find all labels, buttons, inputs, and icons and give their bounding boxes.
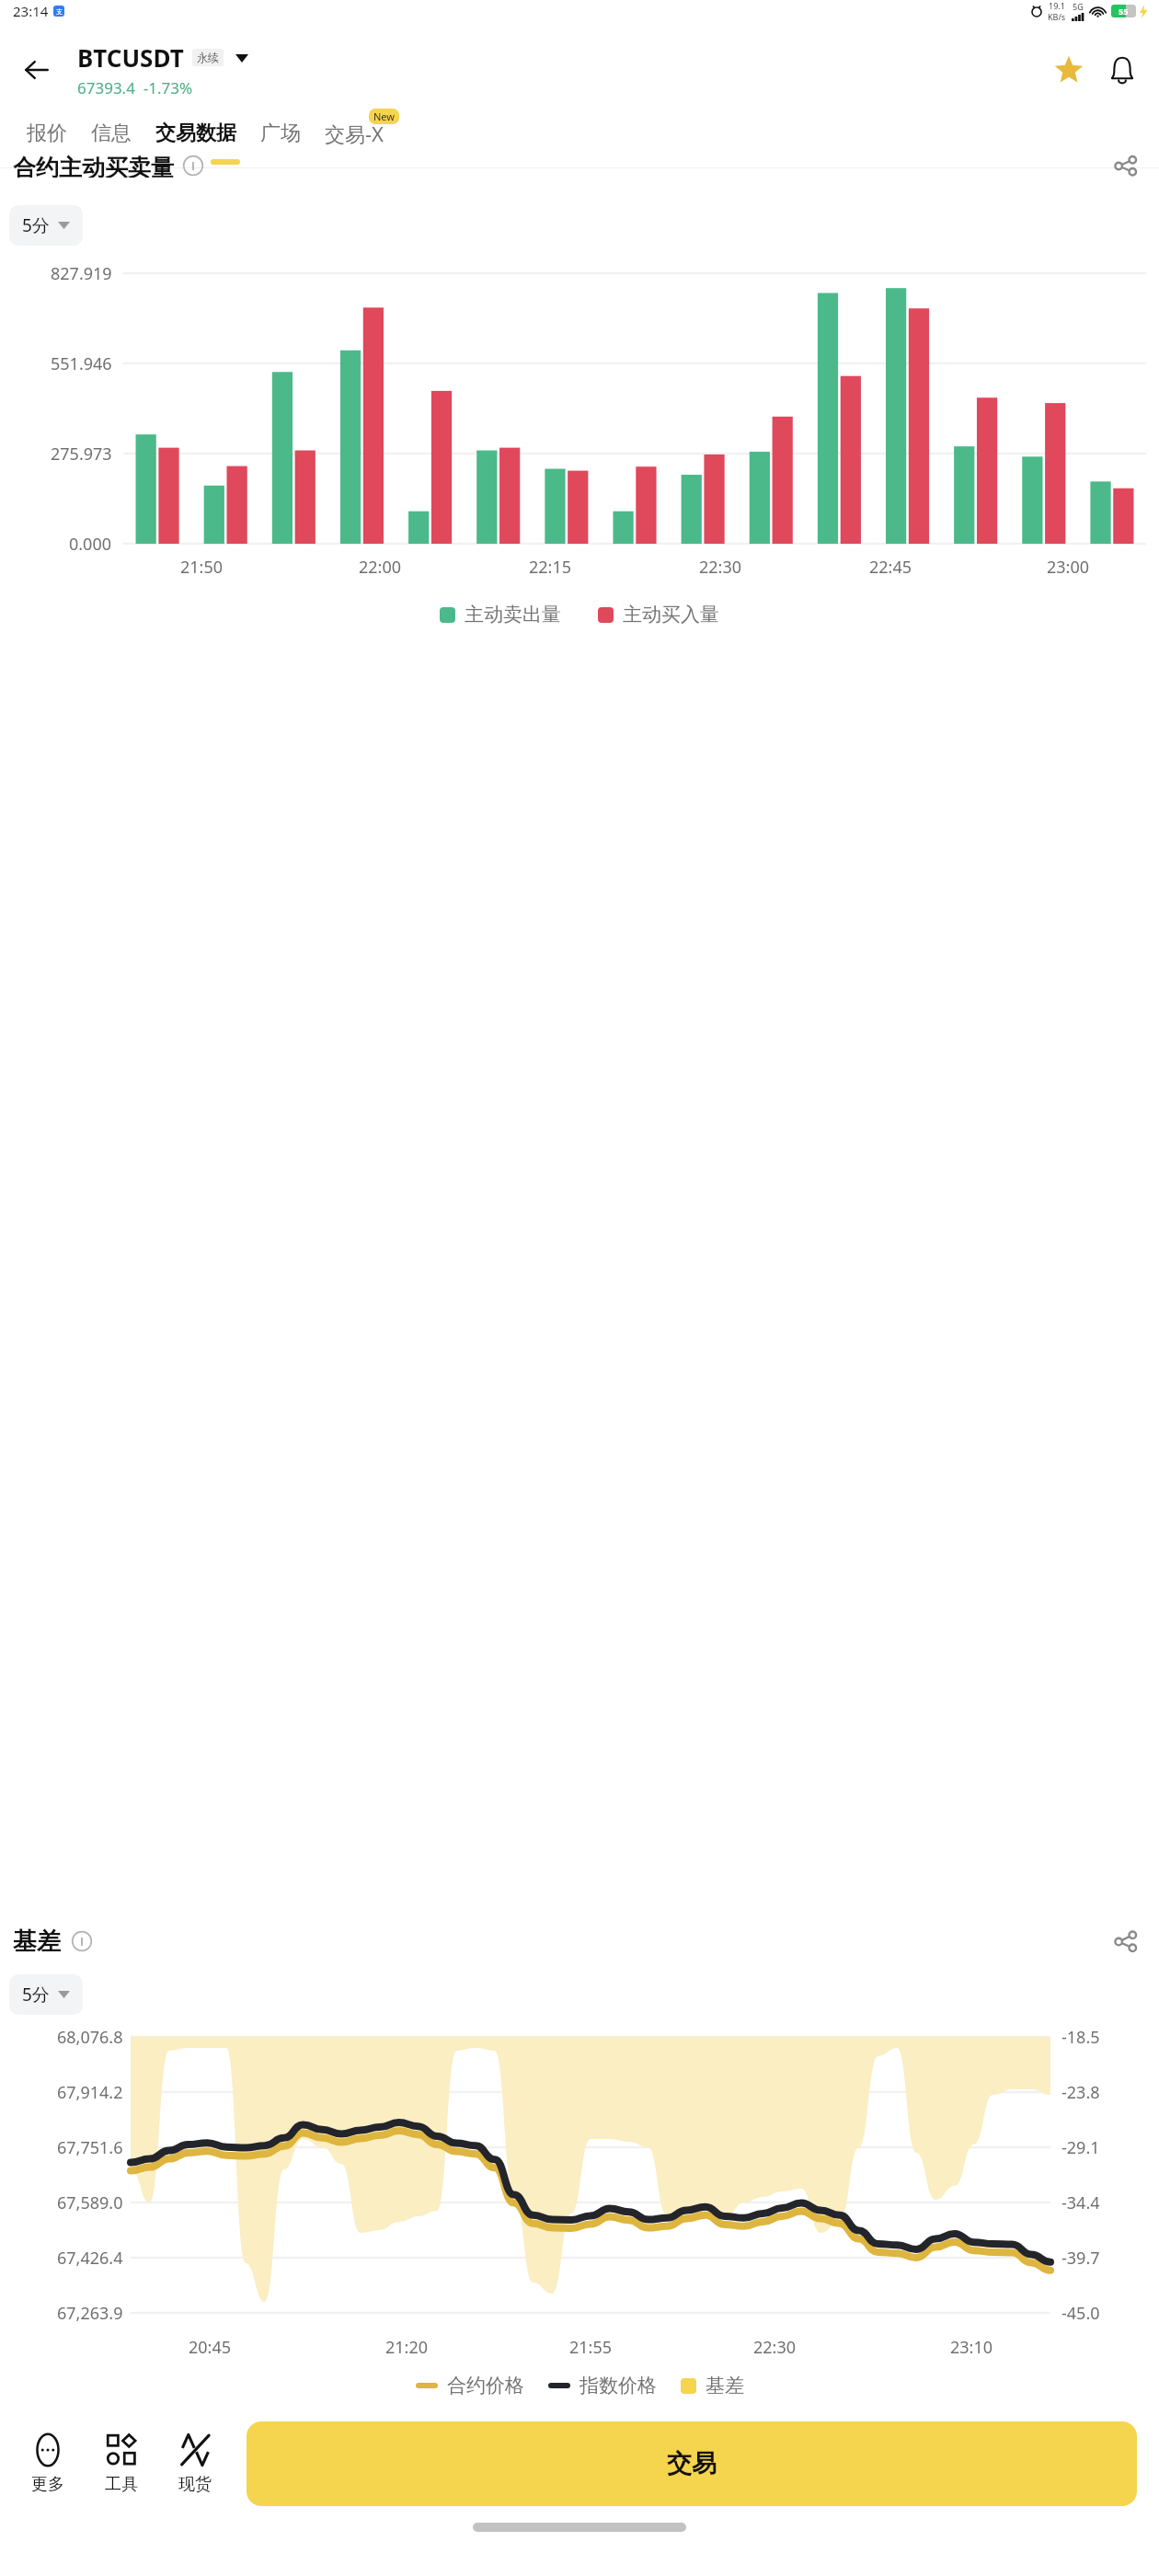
- staticText: 275.973: [51, 443, 112, 466]
- button[interactable]: Alerts: [1098, 46, 1146, 94]
- button[interactable]: 主动买入量: [598, 603, 719, 627]
- staticText: 67,263.9: [57, 2302, 123, 2325]
- staticText: BTCUSDT: [77, 41, 184, 74]
- button[interactable]: 交易: [247, 2421, 1137, 2506]
- button[interactable]: 合约价格: [416, 2374, 524, 2398]
- staticText: 指数价格: [579, 2374, 657, 2398]
- staticText: 主动卖出量: [465, 603, 561, 627]
- staticText: 23:10: [950, 2336, 993, 2359]
- staticText: 工具: [105, 2474, 138, 2495]
- button[interactable]: 指数价格: [548, 2374, 657, 2398]
- staticText: 22:30: [753, 2336, 797, 2359]
- staticText: 更多: [31, 2474, 64, 2495]
- staticText: -29.1: [1061, 2136, 1100, 2159]
- staticText: 67,589.0: [57, 2191, 123, 2214]
- staticText: 永续: [197, 51, 219, 64]
- staticText: 827.919: [51, 262, 112, 285]
- button[interactable]: Back: [13, 46, 61, 94]
- staticText: KB/s: [1048, 11, 1066, 22]
- button[interactable]: 基差: [681, 2374, 744, 2398]
- staticText: 22:30: [699, 556, 742, 579]
- button[interactable]: Share: [1106, 1921, 1146, 1961]
- button[interactable]: 交易数据: [143, 111, 248, 155]
- staticText: 合约主动买卖量: [13, 154, 174, 178]
- staticText: -34.4: [1061, 2191, 1100, 2214]
- staticText: 现货: [178, 2474, 212, 2495]
- staticText: 67,751.6: [57, 2136, 123, 2159]
- button[interactable]: Favorite: [1045, 46, 1093, 94]
- staticText: 551.946: [51, 352, 112, 375]
- staticText: 21:55: [569, 2336, 613, 2359]
- staticText: 5G: [1073, 1, 1084, 12]
- staticText: 0.000: [69, 533, 112, 556]
- staticText: 20:45: [189, 2336, 232, 2359]
- staticText: 21:50: [180, 556, 224, 579]
- staticText: 报价: [27, 121, 67, 146]
- staticText: 支: [56, 7, 63, 16]
- button[interactable]: 交易-X: [313, 110, 396, 156]
- button[interactable]: Switch contract: [231, 47, 253, 69]
- button[interactable]: 5分: [9, 1974, 83, 2015]
- staticText: New: [373, 109, 395, 123]
- staticText: 主动买入量: [623, 603, 719, 627]
- button[interactable]: 工具: [85, 2430, 158, 2499]
- button[interactable]: 广场: [248, 111, 313, 155]
- staticText: 交易-X: [325, 120, 384, 147]
- staticText: 基差: [13, 1926, 61, 1957]
- staticText: 22:00: [359, 556, 402, 579]
- button[interactable]: 主动卖出量: [440, 603, 561, 627]
- staticText: 广场: [260, 121, 301, 146]
- staticText: 68,076.8: [57, 2026, 123, 2049]
- staticText: 基差: [706, 2374, 744, 2398]
- staticText: 信息: [91, 121, 132, 146]
- staticText: 67,426.4: [57, 2247, 123, 2270]
- staticText: 交易数据: [155, 121, 236, 146]
- button[interactable]: 报价: [15, 111, 79, 155]
- button[interactable]: 5分: [9, 205, 83, 246]
- staticText: -39.7: [1061, 2247, 1100, 2270]
- staticText: 23:00: [1047, 556, 1090, 579]
- button[interactable]: 信息: [79, 111, 143, 155]
- staticText: 22:45: [869, 556, 912, 579]
- button[interactable]: Share: [1106, 154, 1146, 178]
- staticText: 交易: [667, 2448, 717, 2479]
- staticText: 21:20: [385, 2336, 429, 2359]
- staticText: 67393.4 -1.73%: [77, 77, 193, 98]
- staticText: 19.1: [1049, 0, 1065, 11]
- staticText: -45.0: [1061, 2302, 1100, 2325]
- staticText: -18.5: [1061, 2026, 1100, 2049]
- staticText: 5分: [22, 1983, 50, 2007]
- button[interactable]: 更多: [11, 2430, 85, 2499]
- staticText: 22:15: [529, 556, 572, 579]
- staticText: 合约价格: [447, 2374, 524, 2398]
- staticText: -23.8: [1061, 2081, 1100, 2104]
- button[interactable]: 现货: [158, 2430, 232, 2499]
- staticText: 5分: [22, 213, 50, 237]
- staticText: 23:14: [13, 2, 49, 20]
- staticText: 55: [1119, 6, 1129, 17]
- staticText: 67,914.2: [57, 2081, 123, 2104]
